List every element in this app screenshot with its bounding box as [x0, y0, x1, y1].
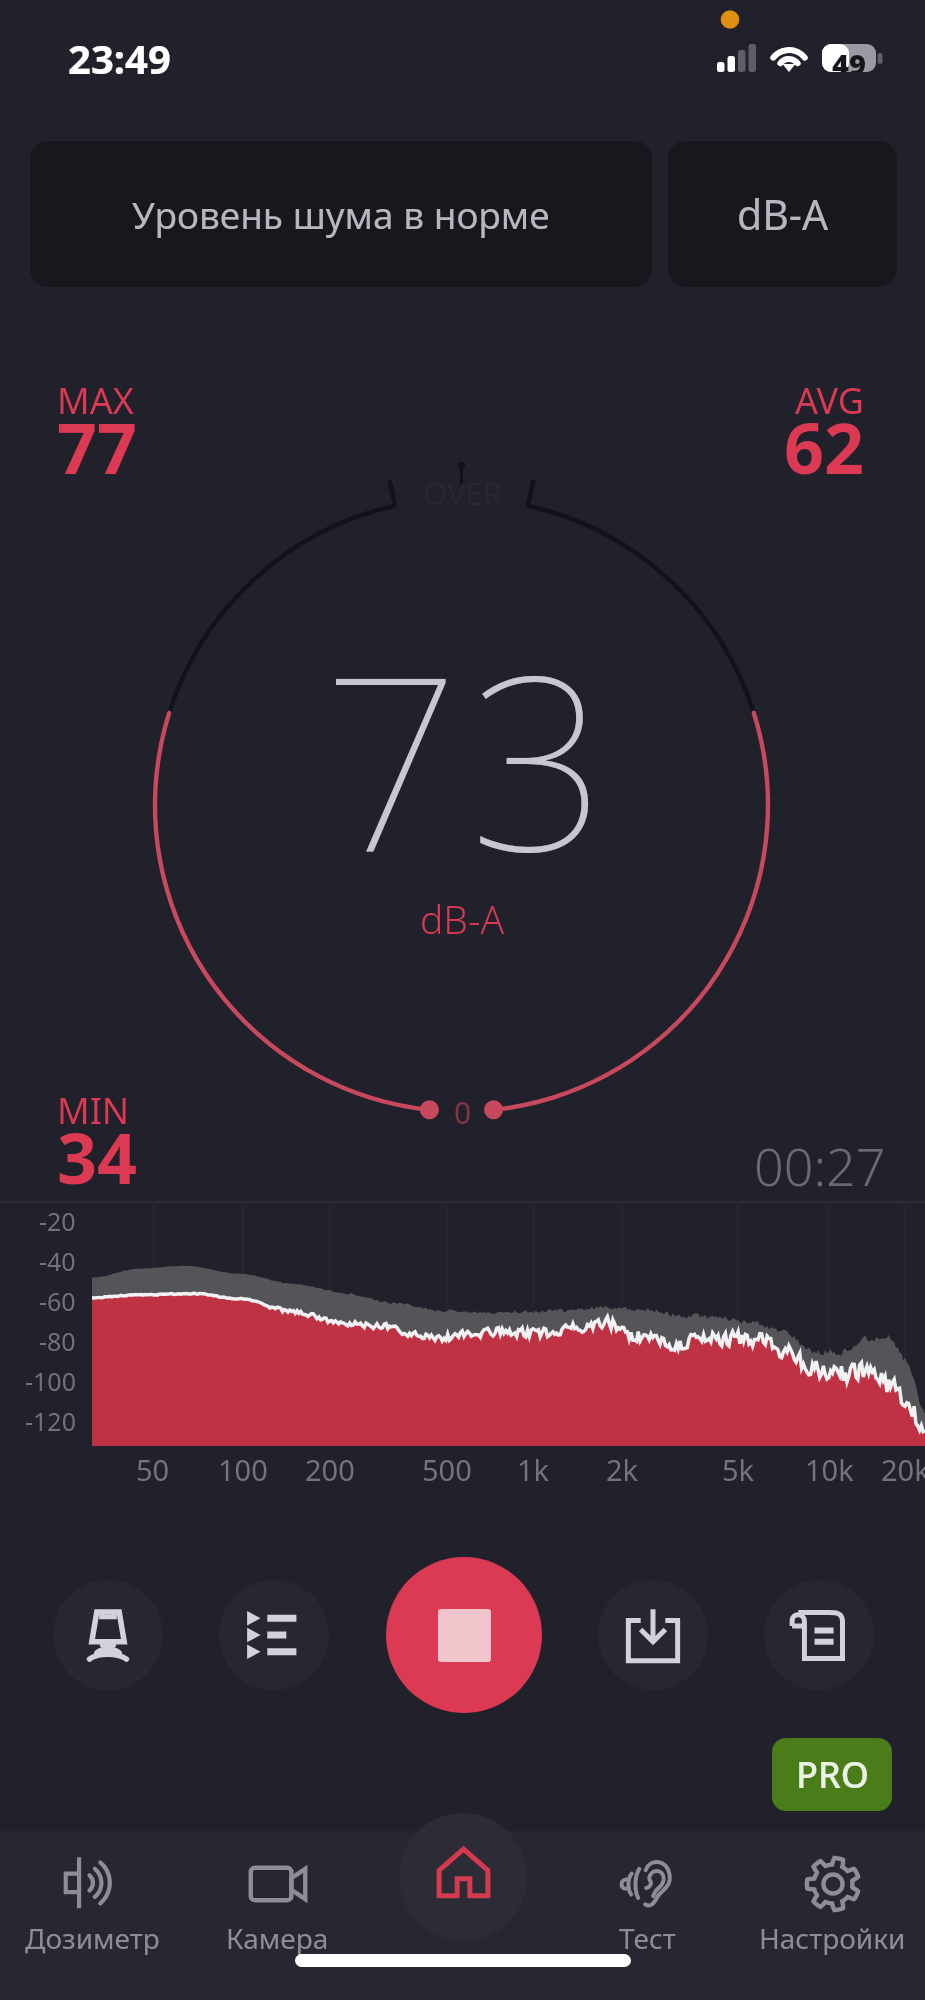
staticText: 20k — [881, 1450, 925, 1489]
staticText: 77 — [57, 399, 138, 494]
staticText: 1k — [517, 1450, 550, 1489]
button[interactable] — [370, 1855, 555, 1955]
staticText: 73 — [322, 592, 616, 922]
staticText: Настройки — [759, 1919, 906, 1955]
button[interactable]: Save — [598, 1580, 708, 1690]
staticText: 500 — [422, 1450, 472, 1489]
button[interactable]: PRO — [772, 1738, 892, 1811]
staticText: 200 — [305, 1450, 355, 1489]
staticText: AVG — [795, 376, 865, 425]
staticText: dB-A — [737, 186, 829, 242]
staticText: -60 — [39, 1284, 76, 1316]
button[interactable]: Stop recording — [386, 1557, 542, 1713]
staticText: MIN — [57, 1086, 130, 1135]
staticText: -120 — [25, 1404, 76, 1436]
staticText: 62 — [784, 399, 865, 494]
staticText: 100 — [218, 1450, 268, 1489]
staticText: MAX — [57, 376, 134, 425]
button[interactable]: Настройки — [740, 1855, 925, 1955]
button[interactable]: Уровень шума в норме — [30, 141, 652, 287]
staticText: Уровень шума в норме — [132, 189, 550, 239]
button[interactable]: Тест — [555, 1855, 740, 1955]
staticText: 00:27 — [754, 1130, 886, 1201]
staticText: 23:49 — [68, 31, 171, 85]
staticText: PRO — [796, 1750, 869, 1799]
staticText: Дозиметр — [25, 1919, 160, 1955]
staticText: -40 — [39, 1244, 76, 1276]
button[interactable]: Calibrate — [53, 1580, 163, 1690]
staticText: dB-A — [420, 892, 505, 945]
staticText: 2k — [606, 1450, 639, 1489]
button[interactable]: Камера — [185, 1855, 370, 1955]
staticText: 5k — [722, 1450, 755, 1489]
staticText: 50 — [136, 1450, 170, 1489]
staticText: -80 — [39, 1324, 76, 1356]
staticText: 0 — [454, 1092, 472, 1133]
staticText: Камера — [226, 1919, 329, 1955]
staticText: -100 — [25, 1364, 76, 1396]
button[interactable]: Home — [399, 1813, 527, 1941]
staticText: 10k — [805, 1450, 854, 1489]
button[interactable]: dB-A — [668, 141, 897, 287]
staticText: 34 — [57, 1109, 138, 1204]
staticText: -20 — [39, 1204, 76, 1236]
button[interactable]: Дозиметр — [0, 1855, 185, 1955]
button[interactable]: Report — [764, 1580, 874, 1690]
staticText: Тест — [619, 1919, 676, 1955]
staticText: 49 — [832, 44, 866, 72]
button[interactable]: Limits — [219, 1580, 329, 1690]
